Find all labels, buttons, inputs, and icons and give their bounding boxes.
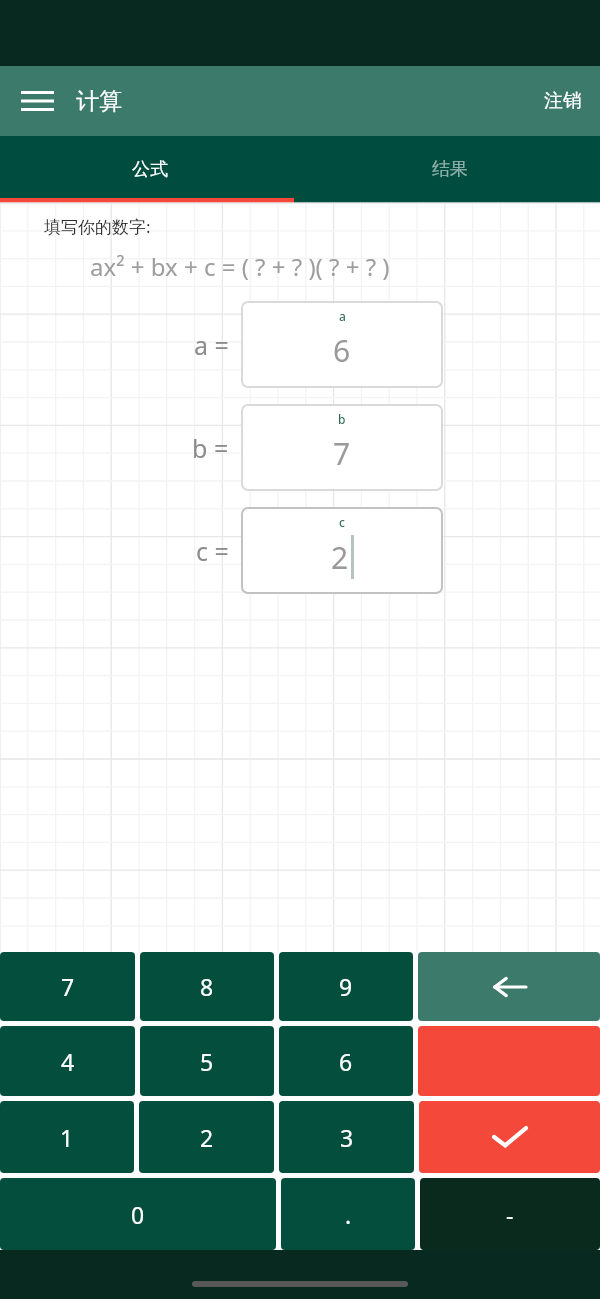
button[interactable]: 2 [139,1101,274,1173]
button[interactable]: 5 [140,1026,274,1096]
button[interactable]: - [420,1178,600,1250]
staticText: 结果 [432,158,468,181]
button[interactable]: Confirm [419,1101,600,1173]
button[interactable]: b [241,404,443,491]
staticText: 2 [331,537,349,578]
staticText: a = [194,328,229,362]
staticText: 6 [333,330,351,371]
button[interactable]: 结果 [300,136,600,203]
button[interactable]: 9 [279,952,413,1021]
button[interactable]: Confirm [418,1026,600,1096]
staticText: 4 [61,1046,75,1077]
staticText: b = [192,431,229,465]
button[interactable]: 6 [279,1026,413,1096]
staticText: ax² + bx + c = ( ? + ? )( ? + ? ) [90,250,390,283]
button[interactable]: Backspace [418,952,600,1021]
staticText: c [339,514,345,530]
staticText: 注销 [544,89,582,113]
button[interactable]: 7 [0,952,135,1021]
button[interactable]: 8 [140,952,274,1021]
staticText: c = [196,534,229,568]
staticText: 0 [131,1199,145,1230]
staticText: 填写你的数字: [44,215,151,238]
button[interactable]: a [241,301,443,388]
staticText: 6 [339,1046,353,1077]
staticText: 公式 [132,158,168,181]
button[interactable]: 公式 [0,136,300,203]
staticText: a [339,308,346,324]
staticText: 3 [340,1122,354,1153]
staticText: 计算 [76,87,122,116]
button[interactable]: . [281,1178,415,1250]
staticText: b [338,411,346,427]
staticText: 7 [333,433,351,474]
button[interactable]: 0 [0,1178,276,1250]
staticText: 9 [339,971,353,1002]
staticText: 5 [200,1046,214,1077]
staticText: 2 [200,1122,214,1153]
button[interactable]: c [241,507,443,594]
staticText: - [506,1199,514,1230]
staticText: 1 [60,1122,74,1153]
button[interactable]: 3 [279,1101,414,1173]
staticText: 8 [200,971,214,1002]
button[interactable]: 1 [0,1101,134,1173]
staticText: 7 [61,971,75,1002]
button[interactable]: 4 [0,1026,135,1096]
staticText: . [345,1199,352,1230]
button[interactable]: Menu [12,76,62,126]
button[interactable]: 注销 [526,79,600,123]
